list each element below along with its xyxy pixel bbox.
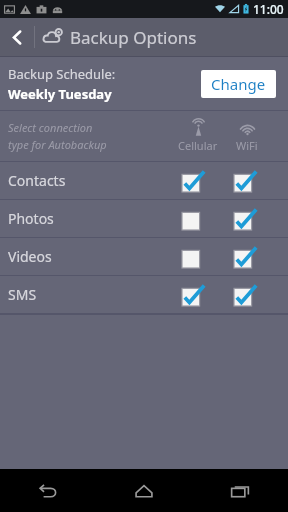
- button[interactable]: Photos over cellular: [178, 204, 208, 234]
- staticText: Change: [211, 74, 266, 94]
- staticText: Backup Options: [70, 26, 197, 49]
- button[interactable]: Photos over WiFi: [230, 204, 260, 234]
- staticText: SMS: [8, 285, 37, 304]
- button[interactable]: Back: [0, 20, 34, 54]
- staticText: Cellular: [178, 138, 218, 153]
- button[interactable]: SMS over cellular: [178, 280, 208, 310]
- staticText: 11:00: [253, 1, 284, 17]
- button[interactable]: Back: [0, 469, 96, 512]
- staticText: Contacts: [8, 171, 66, 190]
- staticText: Select connection: [8, 120, 93, 135]
- button[interactable]: Videos: [0, 238, 288, 275]
- button[interactable]: Photos: [0, 200, 288, 237]
- button[interactable]: Home: [96, 469, 192, 512]
- staticText: Photos: [8, 209, 54, 228]
- button[interactable]: SMS over WiFi: [230, 280, 260, 310]
- button[interactable]: Videos over WiFi: [230, 242, 260, 272]
- staticText: type for Autobackup: [8, 137, 107, 152]
- button[interactable]: Contacts: [0, 162, 288, 199]
- staticText: Backup Schedule:: [8, 65, 116, 83]
- button[interactable]: Videos over cellular: [178, 242, 208, 272]
- staticText: WiFi: [236, 138, 258, 153]
- button[interactable]: Contacts over cellular: [178, 166, 208, 196]
- button[interactable]: SMS: [0, 276, 288, 313]
- button[interactable]: Contacts over WiFi: [230, 166, 260, 196]
- button[interactable]: Recent apps: [192, 469, 288, 512]
- staticText: Videos: [8, 247, 52, 266]
- button[interactable]: Change: [201, 70, 276, 98]
- staticText: Weekly Tuesday: [8, 85, 112, 103]
